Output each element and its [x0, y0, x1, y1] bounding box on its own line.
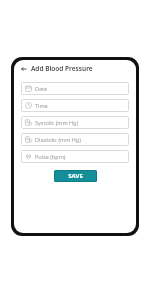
button[interactable]: Pulse (bpm): [21, 150, 129, 163]
staticText: Add Blood Pressure: [31, 64, 93, 73]
button[interactable]: SAVE: [54, 170, 97, 182]
staticText: Diastolic (mm Hg): [35, 136, 81, 143]
button[interactable]: Diastolic (mm Hg): [21, 133, 129, 146]
staticText: Date: [35, 85, 48, 92]
button[interactable]: Date: [21, 82, 129, 95]
staticText: SAVE: [68, 172, 83, 180]
button[interactable]: Back: [19, 64, 28, 73]
staticText: Time: [35, 102, 48, 109]
staticText: Systolic (mm Hg): [35, 119, 79, 126]
staticText: Pulse (bpm): [35, 153, 66, 160]
button[interactable]: Systolic (mm Hg): [21, 116, 129, 129]
button[interactable]: Time: [21, 99, 129, 112]
